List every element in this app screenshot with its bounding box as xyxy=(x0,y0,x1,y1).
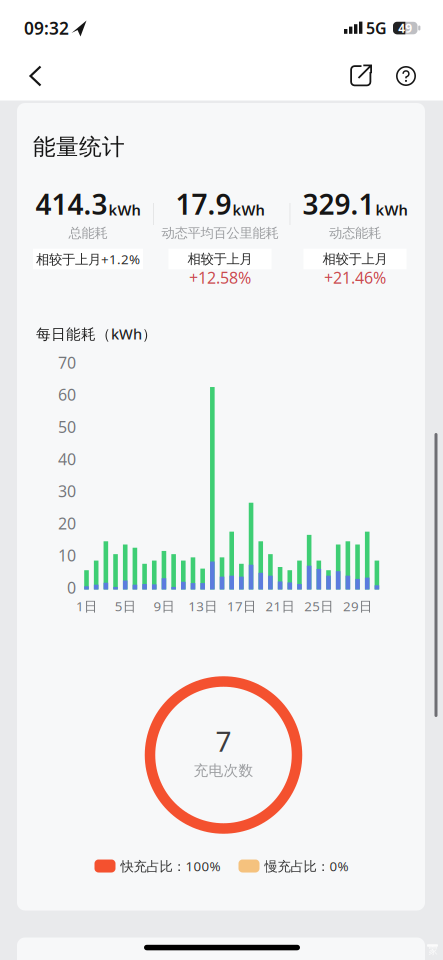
staticText: 7 xyxy=(215,722,231,760)
staticText: 总能耗 xyxy=(68,225,107,241)
staticText: 动态能耗 xyxy=(329,225,381,241)
staticText: 50 xyxy=(58,416,76,437)
staticText: 相较于上月 xyxy=(187,251,252,267)
staticText: 5G xyxy=(366,17,387,39)
staticText: 40 xyxy=(58,448,76,469)
staticText: 5日 xyxy=(115,597,136,615)
staticText: kWh xyxy=(108,200,140,220)
button[interactable] xyxy=(348,63,374,89)
staticText: kWh xyxy=(375,200,407,220)
staticText: 49 xyxy=(398,20,412,36)
staticText: 17.9 xyxy=(175,185,231,223)
staticText: 相较于上月 xyxy=(322,251,387,267)
staticText: 10 xyxy=(58,545,76,566)
staticText: +12.58% xyxy=(189,267,251,288)
staticText: 家 xyxy=(428,945,437,957)
staticText: 充电次数 xyxy=(193,761,253,779)
staticText: 每日能耗（kWh） xyxy=(36,324,157,343)
staticText: +21.46% xyxy=(324,267,386,288)
staticText: 能量统计 xyxy=(33,133,125,161)
staticText: 25日 xyxy=(304,597,333,615)
staticText: 30 xyxy=(58,480,76,502)
staticText: 09:32 xyxy=(24,16,69,39)
staticText: kWh xyxy=(232,200,264,220)
staticText: 70 xyxy=(58,352,76,373)
staticText: 相较于上月+1.2% xyxy=(36,250,140,268)
staticText: 慢充占比：0% xyxy=(264,857,348,875)
button[interactable] xyxy=(393,63,419,89)
staticText: 20 xyxy=(58,513,76,534)
staticText: 13日 xyxy=(188,597,217,615)
staticText: 动态平均百公里能耗 xyxy=(161,225,278,241)
staticText: 1日 xyxy=(76,597,97,615)
staticText: 21日 xyxy=(266,597,295,615)
staticText: 0 xyxy=(67,577,76,598)
button[interactable] xyxy=(24,62,52,90)
staticText: 17日 xyxy=(227,597,256,615)
staticText: 60 xyxy=(58,384,76,405)
staticText: 29日 xyxy=(343,597,372,615)
staticText: 329.1 xyxy=(302,185,374,223)
staticText: 414.3 xyxy=(35,185,107,223)
staticText: 快充占比：100% xyxy=(120,857,220,875)
staticText: 9日 xyxy=(153,597,174,615)
